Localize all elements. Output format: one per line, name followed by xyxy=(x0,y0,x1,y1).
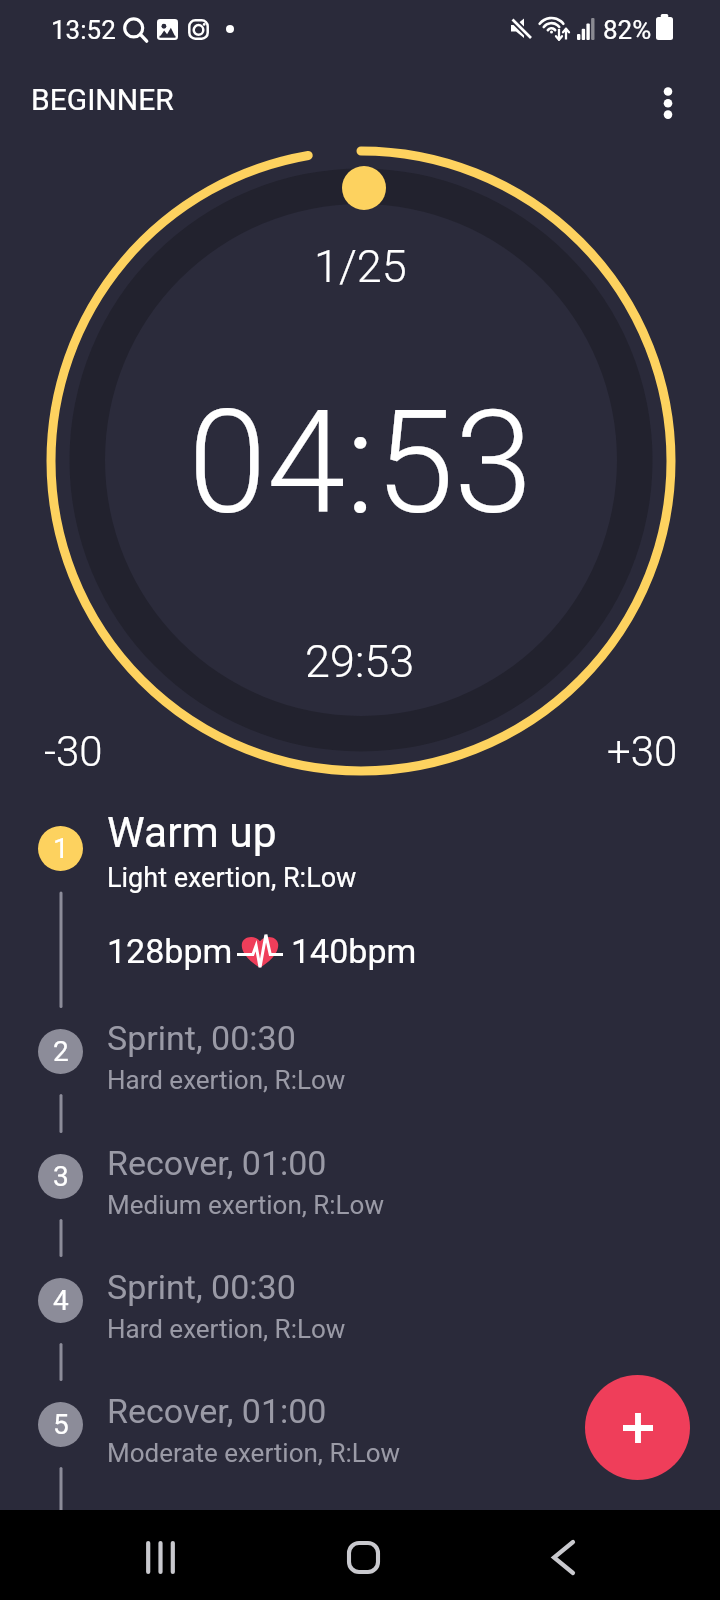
staticText: 3 xyxy=(53,1160,69,1193)
button[interactable] xyxy=(0,1378,720,1470)
button[interactable]: More options xyxy=(636,71,700,135)
staticText: 140bpm xyxy=(291,931,417,971)
button[interactable] xyxy=(0,1130,720,1222)
button[interactable] xyxy=(0,1254,720,1346)
staticText: 13:52 xyxy=(51,15,116,45)
button[interactable]: Recent apps xyxy=(116,1512,206,1600)
staticText: 1/25 xyxy=(314,240,407,293)
button[interactable]: +30 xyxy=(591,723,694,780)
staticText: Sprint, 00:30 xyxy=(107,1018,296,1058)
staticText: 1 xyxy=(53,832,69,865)
staticText: Recover, 01:00 xyxy=(107,1391,327,1431)
staticText: Hard exertion, R:Low xyxy=(107,1065,346,1095)
button[interactable]: -30 xyxy=(28,723,119,780)
staticText: 4 xyxy=(53,1284,69,1317)
staticText: 82% xyxy=(603,15,652,45)
button[interactable]: Home xyxy=(318,1512,408,1600)
staticText: 04:53 xyxy=(188,380,533,546)
staticText: Light exertion, R:Low xyxy=(107,862,357,894)
staticText: Sprint, 00:30 xyxy=(107,1267,296,1307)
staticText: 2 xyxy=(53,1035,69,1068)
staticText: Medium exertion, R:Low xyxy=(107,1190,384,1220)
staticText: 29:53 xyxy=(305,635,415,688)
staticText: -30 xyxy=(44,727,103,776)
staticText: Moderate exertion, R:Low xyxy=(107,1438,401,1468)
staticText: 128bpm xyxy=(107,931,233,971)
staticText: 5 xyxy=(53,1408,69,1441)
button[interactable] xyxy=(0,803,720,895)
staticText: Hard exertion, R:Low xyxy=(107,1314,346,1344)
staticText: Recover, 01:00 xyxy=(107,1143,327,1183)
staticText: BEGINNER xyxy=(31,82,174,117)
button[interactable] xyxy=(0,1005,720,1097)
staticText: +30 xyxy=(607,727,678,776)
staticText: Warm up xyxy=(107,808,277,858)
button[interactable]: Back xyxy=(518,1512,608,1600)
button[interactable]: Add interval xyxy=(585,1375,690,1480)
